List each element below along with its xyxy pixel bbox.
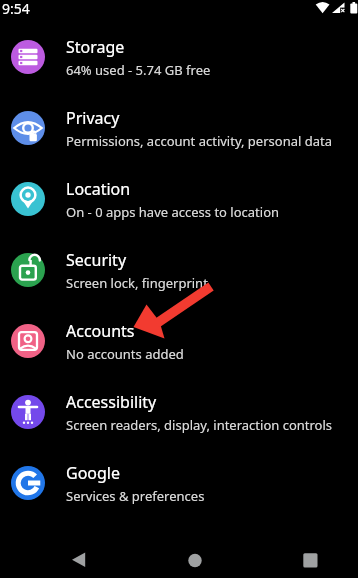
- staticText: Storage: [66, 36, 125, 58]
- staticText: Services & preferences: [66, 487, 205, 505]
- button[interactable]: Accessibility: [0, 376, 358, 447]
- staticText: Accounts: [66, 320, 135, 342]
- staticText: No accounts added: [66, 345, 184, 363]
- button[interactable]: [239, 530, 358, 578]
- staticText: 9:54: [2, 0, 30, 18]
- staticText: Accessibility: [66, 391, 157, 413]
- button[interactable]: Privacy: [0, 92, 358, 163]
- button[interactable]: Storage: [0, 21, 358, 92]
- staticText: Location: [66, 178, 131, 200]
- staticText: Screen readers, display, interaction con…: [66, 416, 333, 434]
- staticText: Permissions, account activity, personal …: [66, 132, 332, 150]
- staticText: Google: [66, 462, 121, 484]
- staticText: On - 0 apps have access to location: [66, 203, 280, 221]
- button[interactable]: Location: [0, 163, 358, 234]
- staticText: Screen lock, fingerprint: [66, 274, 208, 292]
- button[interactable]: Google: [0, 447, 358, 518]
- button[interactable]: Accounts: [0, 305, 358, 376]
- button[interactable]: Security: [0, 234, 358, 305]
- staticText: Security: [66, 249, 127, 271]
- staticText: Privacy: [66, 107, 120, 129]
- button[interactable]: [120, 530, 239, 578]
- staticText: 64% used - 5.74 GB free: [66, 61, 211, 79]
- button[interactable]: [0, 530, 120, 578]
